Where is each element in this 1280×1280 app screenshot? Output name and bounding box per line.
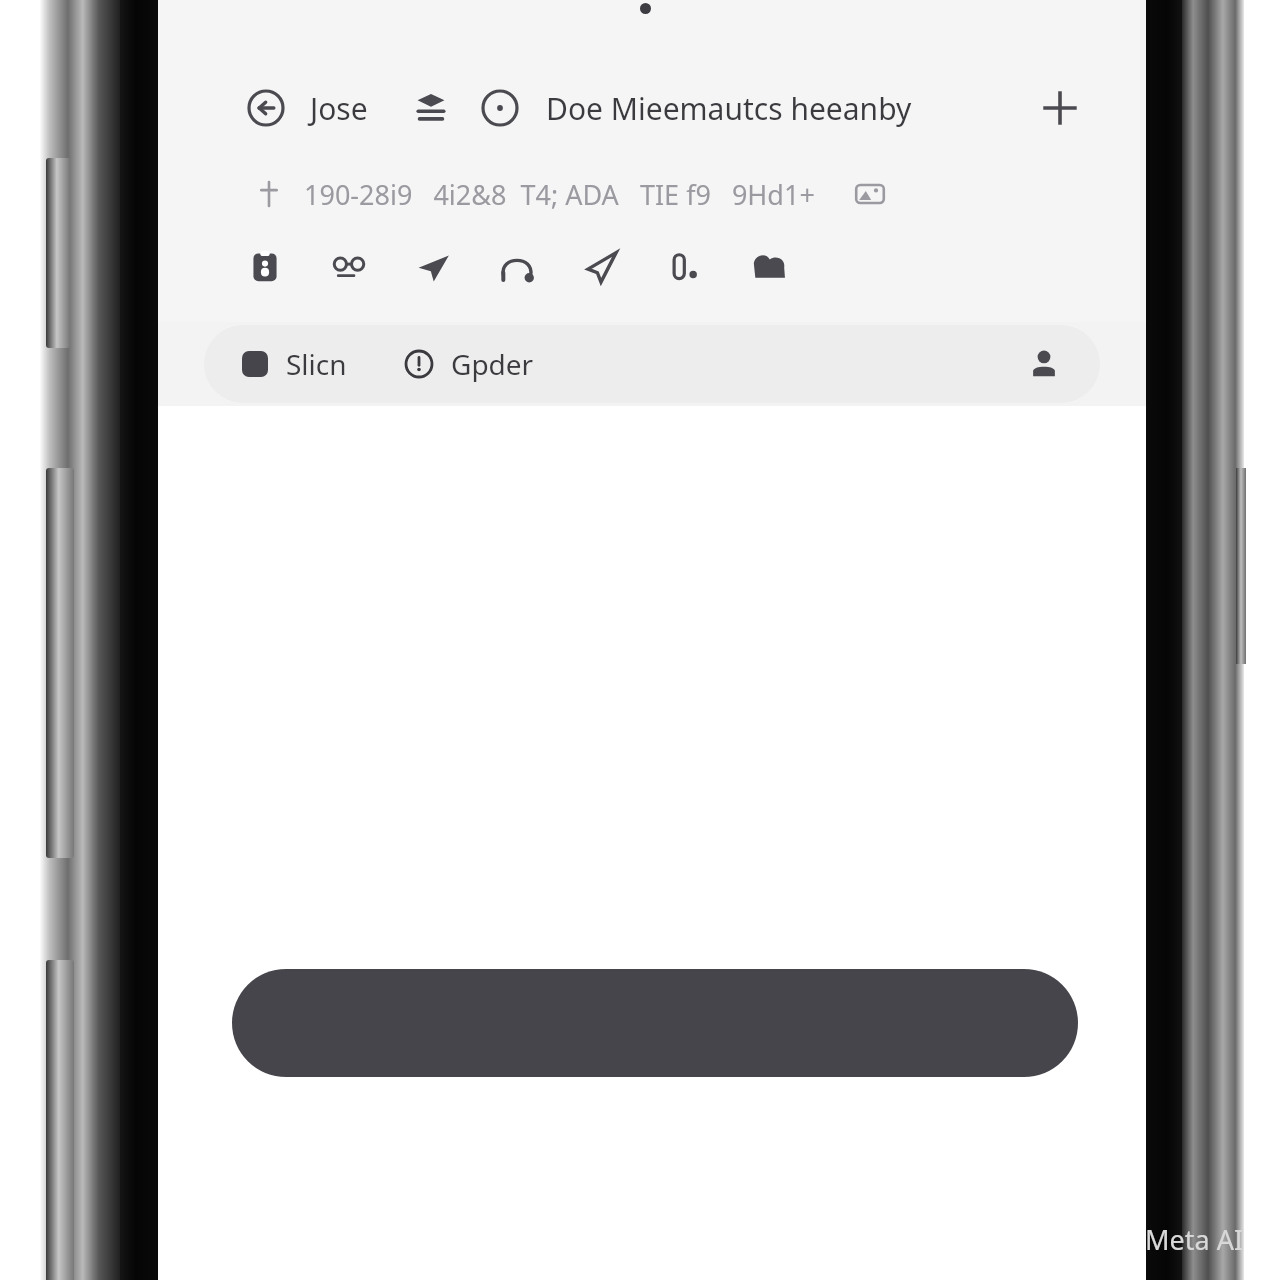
button[interactable]: Share xyxy=(574,240,628,294)
button[interactable]: Chat xyxy=(742,240,796,294)
staticText: Gpder xyxy=(451,345,534,383)
staticText: Slicn xyxy=(286,345,347,383)
button[interactable]: Back xyxy=(244,86,288,130)
button[interactable]: Device xyxy=(658,240,712,294)
button[interactable]: Menu xyxy=(410,87,452,129)
staticText: 190-28i9 4i2&8 T4; ADA TIE f9 9Hd1+ xyxy=(304,176,815,213)
button[interactable]: Primary action xyxy=(232,969,1078,1077)
button[interactable]: Audio xyxy=(490,240,544,294)
button[interactable]: Send xyxy=(406,240,460,294)
other: Image xyxy=(853,177,887,211)
button[interactable]: Slicn xyxy=(204,325,1100,403)
button[interactable]: Notes xyxy=(238,240,292,294)
button[interactable]: Glasses xyxy=(322,240,376,294)
button[interactable]: Account xyxy=(1024,344,1064,384)
button[interactable]: Record xyxy=(478,86,522,130)
staticText: Meta AI xyxy=(1145,1221,1244,1258)
button[interactable]: Add xyxy=(1032,80,1088,136)
button[interactable]: Doe Mieemautcs heeanby xyxy=(546,88,912,129)
button[interactable]: Jose xyxy=(310,88,368,129)
